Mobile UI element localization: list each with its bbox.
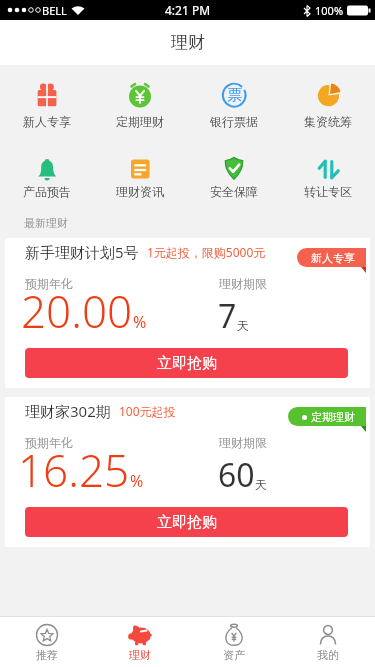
button[interactable]: 立即抢购 (25, 507, 348, 537)
staticText: 理财期限 (219, 435, 267, 449)
button[interactable] (5, 397, 370, 547)
button[interactable]: 集资统筹 (281, 82, 375, 129)
button[interactable]: 新人专享 (0, 82, 93, 129)
staticText: 1元起投，限购5000元 (147, 244, 266, 260)
button[interactable]: 我的 (281, 617, 375, 667)
staticText: 天 (255, 477, 267, 492)
button[interactable]: 安全保障 (187, 152, 281, 199)
staticText: 20.00 (21, 281, 133, 341)
staticText: 4:21 PM (165, 2, 211, 18)
staticText: 转让专区 (304, 184, 352, 199)
button[interactable]: 票 (187, 82, 281, 129)
button[interactable]: 产品预告 (0, 152, 93, 199)
staticText: 理财家302期 (25, 401, 111, 421)
button[interactable]: 推荐 (0, 617, 93, 667)
staticText: 集资统筹 (304, 114, 352, 129)
button[interactable]: 理财资讯 (93, 152, 187, 199)
staticText: 天 (237, 318, 249, 333)
staticText: 票 (227, 86, 242, 105)
staticText: 最新理财 (24, 216, 68, 230)
staticText: BELL (42, 3, 67, 18)
staticText: 新人专享 (23, 114, 71, 129)
button[interactable]: 转让专区 (281, 152, 375, 199)
button[interactable]: 资产 (187, 617, 281, 667)
staticText: 预期年化 (25, 276, 73, 290)
staticText: 16.25 (18, 440, 130, 500)
button[interactable]: 立即抢购 (25, 348, 348, 378)
staticText: 我的 (317, 648, 339, 662)
staticText: 理财资讯 (116, 184, 164, 199)
staticText: 推荐 (36, 648, 58, 662)
staticText: 理财 (129, 648, 151, 662)
staticText: 产品预告 (23, 184, 71, 199)
button[interactable]: 新人专享 (297, 248, 366, 267)
staticText: % (130, 470, 144, 492)
staticText: 新人专享 (311, 251, 355, 265)
staticText: 立即抢购 (157, 354, 217, 373)
staticText: 60 (218, 453, 255, 497)
staticText: 定期理财 (311, 410, 355, 424)
staticText: 100% (315, 3, 344, 18)
button[interactable]: 理财 (93, 617, 187, 667)
button[interactable]: 定期理财 (288, 407, 366, 426)
staticText: 7 (218, 294, 237, 338)
staticText: 定期理财 (116, 114, 164, 129)
staticText: 预期年化 (25, 435, 73, 449)
staticText: 100元起投 (119, 403, 176, 419)
staticText: 资产 (223, 648, 245, 662)
staticText: 理财 (171, 32, 205, 53)
button[interactable] (5, 238, 370, 388)
staticText: 安全保障 (210, 184, 258, 199)
staticText: 立即抢购 (157, 513, 217, 532)
staticText: 理财期限 (219, 276, 267, 290)
button[interactable]: 定期理财 (93, 82, 187, 129)
staticText: 银行票据 (210, 114, 258, 129)
staticText: 新手理财计划5号 (25, 242, 139, 262)
staticText: % (133, 311, 147, 333)
